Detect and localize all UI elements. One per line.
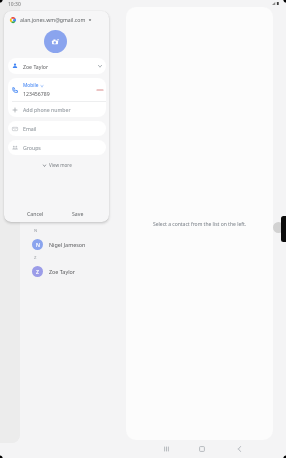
- staticText: alan.jones.wm@gmail.com: [20, 16, 86, 23]
- button[interactable]: Email: [8, 121, 106, 136]
- staticText: Add phone number: [23, 106, 71, 113]
- staticText: 123456789: [23, 90, 50, 97]
- button[interactable]: Recents: [158, 441, 174, 457]
- staticText: Email: [23, 125, 37, 132]
- staticText: Groups: [23, 144, 41, 151]
- staticText: N: [34, 228, 38, 234]
- staticText: View more: [49, 162, 72, 168]
- staticText: Z: [36, 268, 39, 275]
- staticText: 10:30: [8, 1, 21, 8]
- button[interactable]: Home: [194, 441, 210, 457]
- button[interactable]: Zoe Taylor: [8, 58, 106, 74]
- button[interactable]: Back: [231, 441, 247, 457]
- button[interactable]: Mobile: [8, 78, 106, 101]
- button[interactable]: View more: [4, 160, 109, 170]
- button[interactable]: Save: [60, 207, 96, 219]
- staticText: Select a contact from the list on the le…: [153, 221, 247, 228]
- staticText: Z: [34, 255, 37, 261]
- staticText: Zoe Taylor: [23, 63, 49, 70]
- staticText: Save: [72, 210, 84, 217]
- button[interactable]: Add phone number: [8, 102, 106, 117]
- staticText: Mobile: [23, 82, 39, 89]
- staticText: Nigel Jameson: [49, 241, 86, 248]
- button[interactable]: Add photo: [44, 30, 67, 53]
- button[interactable]: Z: [20, 262, 126, 280]
- button[interactable]: N: [20, 235, 126, 253]
- button[interactable]: alan.jones.wm@gmail.com: [4, 14, 109, 25]
- button[interactable]: Groups: [8, 140, 106, 155]
- staticText: N: [36, 241, 40, 248]
- staticText: Zoe Taylor: [49, 268, 76, 275]
- staticText: Cancel: [27, 210, 44, 217]
- button[interactable]: Cancel: [17, 207, 53, 219]
